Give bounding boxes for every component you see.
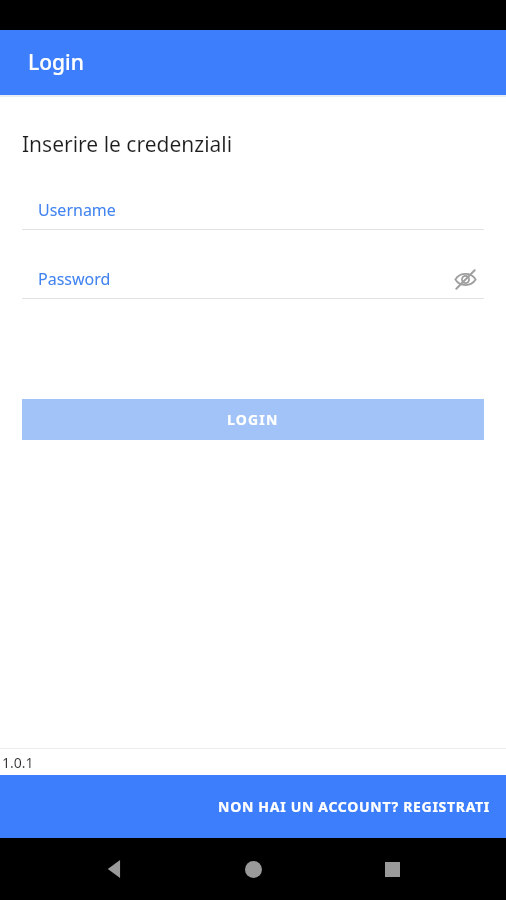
staticText: Login — [28, 48, 84, 77]
button[interactable]: Recent apps — [368, 845, 416, 893]
button[interactable]: Password — [22, 268, 446, 290]
button[interactable]: Back — [91, 845, 139, 893]
staticText: Password — [38, 268, 111, 290]
button[interactable]: Show password — [446, 260, 484, 298]
staticText: NON HAI UN ACCOUNT? REGISTRATI — [0, 797, 490, 816]
button[interactable]: NON HAI UN ACCOUNT? REGISTRATI — [0, 775, 506, 838]
button[interactable]: Username — [22, 190, 484, 230]
button[interactable]: Home — [229, 845, 277, 893]
staticText: Inserire le credenziali — [22, 130, 233, 159]
staticText: 1.0.1 — [2, 753, 34, 772]
staticText: LOGIN — [227, 410, 279, 429]
staticText: Username — [38, 199, 116, 221]
button[interactable]: LOGIN — [22, 399, 484, 440]
